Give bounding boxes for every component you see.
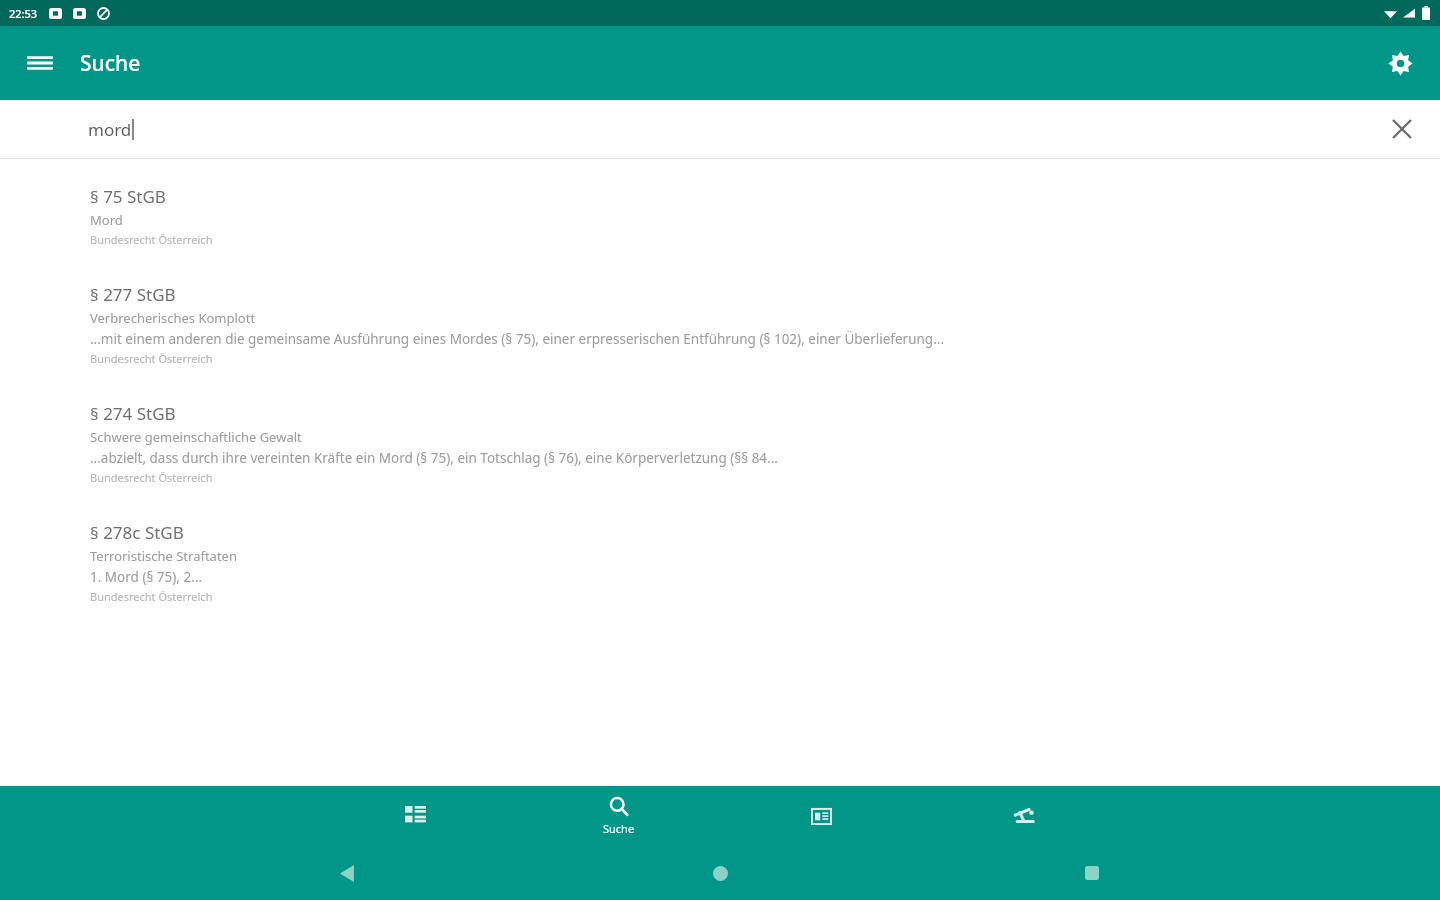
staticText: Bundesrecht Österreich [90,351,213,366]
button[interactable]: Löschen [1380,107,1424,151]
staticText: Bundesrecht Österreich [90,232,213,247]
button[interactable]: Zurück [324,849,372,897]
button[interactable]: Suche [517,786,720,846]
button[interactable]: § 75 StGB [0,159,1440,247]
button[interactable]: Menü [14,37,66,89]
button[interactable]: § 274 StGB [0,366,1440,485]
button[interactable]: Nachrichten [720,786,923,846]
staticText: § 277 StGB [90,283,176,306]
button[interactable]: Übersicht [314,786,517,846]
button[interactable]: § 278c StGB [0,485,1440,604]
staticText: § 274 StGB [90,402,176,425]
staticText: Verbrecherisches Komplott [90,309,256,327]
staticText: mord [88,118,132,141]
button[interactable]: § 277 StGB [0,247,1440,366]
staticText: Suche [603,821,635,836]
staticText: 22:53 [9,6,38,21]
staticText: ...abzielt, dass durch ihre vereinten Kr… [90,449,778,467]
staticText: § 75 StGB [90,185,166,208]
staticText: Suche [80,49,141,78]
staticText: Schwere gemeinschaftliche Gewalt [90,428,302,446]
staticText: Bundesrecht Österreich [90,589,213,604]
staticText: ...mit einem anderen die gemeinsame Ausf… [90,330,945,348]
button[interactable]: Werkzeuge [923,786,1126,846]
staticText: Mord [90,211,123,229]
staticText: Terroristische Straftaten [90,547,237,565]
button[interactable]: Startbildschirm [696,849,744,897]
staticText: § 278c StGB [90,521,184,544]
button[interactable]: Einstellungen [1374,37,1426,89]
staticText: Bundesrecht Österreich [90,470,213,485]
button[interactable]: Übersicht [1068,849,1116,897]
staticText: 1. Mord (§ 75), 2... [90,568,203,586]
